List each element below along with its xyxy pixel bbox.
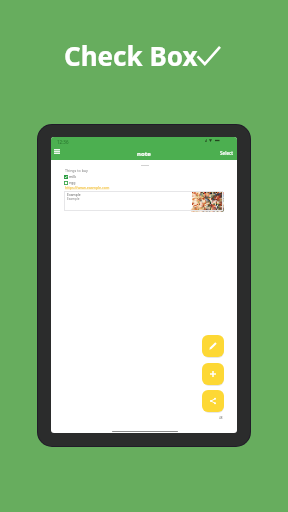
- button[interactable]: Share: [202, 390, 224, 412]
- button[interactable]: Add: [202, 363, 224, 385]
- staticText: Select: [220, 150, 234, 156]
- button[interactable]: Menu: [51, 145, 63, 157]
- button[interactable]: Edit: [202, 335, 224, 357]
- button[interactable]: egg: [64, 180, 76, 185]
- staticText: Check Box: [64, 38, 198, 73]
- button[interactable]: Example: [64, 191, 223, 211]
- staticText: https://www.example.com: [65, 185, 110, 190]
- button[interactable]: milk: [64, 174, 77, 179]
- staticText: milk: [69, 174, 77, 179]
- staticText: egg: [69, 180, 76, 185]
- staticText: Example: [67, 197, 80, 201]
- staticText: 12:36: [57, 139, 69, 145]
- staticText: 48: [219, 416, 223, 420]
- staticText: Example: [67, 192, 81, 197]
- staticText: note: [137, 150, 151, 158]
- button[interactable]: https://www.example.com: [65, 185, 110, 190]
- button[interactable]: Select: [217, 149, 237, 157]
- staticText: Things to buy: [65, 168, 88, 173]
